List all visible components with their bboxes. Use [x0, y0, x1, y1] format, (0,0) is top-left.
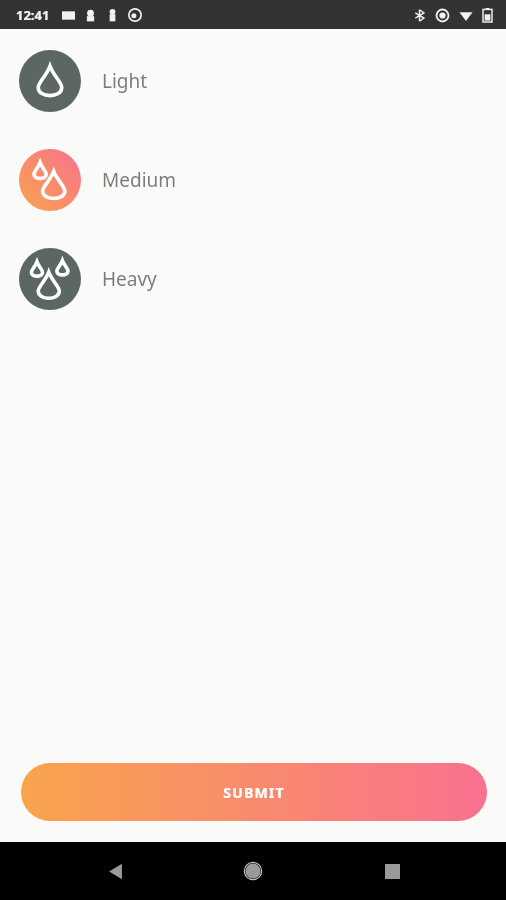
staticText: Medium [102, 167, 177, 193]
button[interactable]: Home [229, 847, 277, 895]
button[interactable]: Recent apps [368, 847, 416, 895]
staticText: Heavy [102, 266, 157, 292]
button[interactable]: Heavy [0, 229, 506, 328]
staticText: Light [102, 68, 148, 94]
button[interactable]: SUBMIT [21, 763, 487, 821]
staticText: 12:41 [16, 6, 50, 24]
button[interactable]: Light [0, 31, 506, 130]
staticText: SUBMIT [223, 783, 285, 802]
button[interactable]: Back [91, 847, 139, 895]
button[interactable]: Medium [0, 130, 506, 229]
